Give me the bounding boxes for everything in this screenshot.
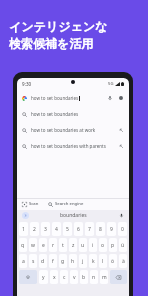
button[interactable]: r — [49, 238, 57, 252]
button[interactable]: 8 — [96, 222, 105, 236]
button[interactable]: l — [99, 254, 107, 268]
button[interactable]: z — [69, 238, 77, 252]
staticText: 8 — [99, 226, 102, 233]
button[interactable]: how to set boundaries — [22, 90, 124, 106]
staticText: Scan — [29, 201, 39, 207]
staticText: 7 — [88, 226, 91, 233]
button[interactable]: 3 — [41, 222, 50, 236]
staticText: how to set boundaries — [31, 111, 79, 117]
staticText: 検索候補を活用 — [9, 36, 94, 51]
button[interactable]: how to set boundaries with parents — [22, 138, 124, 154]
button[interactable]: Clear — [118, 95, 124, 101]
button[interactable]: t — [59, 238, 67, 252]
staticText: 6 — [77, 226, 80, 233]
button[interactable]: Insert suggestion — [119, 128, 124, 133]
staticText: d — [41, 258, 45, 265]
button[interactable]: Insert suggestion — [119, 144, 124, 149]
staticText: how to set boundaries with parents — [31, 143, 106, 149]
staticText: l — [102, 258, 104, 265]
button[interactable]: f — [49, 254, 57, 268]
staticText: ö — [111, 258, 115, 265]
staticText: v — [73, 274, 76, 281]
staticText: 4 — [55, 226, 58, 233]
button[interactable]: Scan — [22, 201, 39, 207]
button[interactable]: i — [89, 238, 97, 252]
staticText: 2 — [33, 226, 36, 233]
staticText: 3 — [44, 226, 47, 233]
staticText: 5G — [108, 81, 114, 87]
button[interactable]: ö — [109, 254, 117, 268]
staticText: how to set boundaries — [31, 95, 79, 101]
staticText: 9 — [110, 226, 113, 233]
button[interactable]: s — [29, 254, 37, 268]
button[interactable]: Expand — [22, 212, 29, 219]
button[interactable]: w — [29, 238, 37, 252]
button[interactable]: ä — [119, 254, 127, 268]
staticText: y — [42, 274, 45, 281]
button[interactable]: how to set boundaries at work — [22, 122, 124, 138]
button[interactable]: 5 — [63, 222, 72, 236]
button[interactable]: boundaries — [60, 212, 87, 219]
staticText: j — [82, 258, 84, 265]
staticText: 5 — [66, 226, 69, 233]
staticText: 9:30 — [22, 81, 32, 87]
button[interactable]: q — [19, 238, 27, 252]
staticText: c — [63, 274, 66, 281]
button[interactable]: u — [79, 238, 87, 252]
button[interactable]: g — [59, 254, 67, 268]
button[interactable]: y — [39, 270, 48, 284]
button[interactable]: 2 — [30, 222, 39, 236]
staticText: f — [52, 258, 54, 265]
staticText: n — [92, 274, 96, 281]
button[interactable]: c — [60, 270, 68, 284]
staticText: t — [62, 242, 64, 249]
staticText: g — [61, 258, 65, 265]
button[interactable]: Search engine — [48, 201, 84, 207]
button[interactable]: x — [50, 270, 58, 284]
button[interactable]: 4 — [52, 222, 61, 236]
button[interactable]: Backspace — [110, 270, 127, 284]
staticText: ü — [121, 242, 125, 249]
button[interactable]: o — [99, 238, 107, 252]
staticText: s — [32, 258, 35, 265]
staticText: ä — [122, 258, 125, 265]
button[interactable]: k — [89, 254, 97, 268]
button[interactable]: b — [80, 270, 88, 284]
button[interactable]: 1 — [19, 222, 28, 236]
button[interactable]: e — [39, 238, 47, 252]
staticText: z — [72, 242, 75, 249]
button[interactable]: n — [90, 270, 98, 284]
staticText: Search engine — [55, 201, 84, 207]
button[interactable]: how to set boundaries — [22, 106, 124, 122]
staticText: b — [82, 274, 86, 281]
staticText: r — [52, 242, 55, 249]
button[interactable]: j — [79, 254, 87, 268]
button[interactable]: 7 — [85, 222, 94, 236]
button[interactable]: m — [100, 270, 108, 284]
button[interactable]: Shift — [19, 270, 37, 284]
staticText: 1 — [22, 226, 25, 233]
button[interactable]: a — [19, 254, 27, 268]
button[interactable]: 6 — [74, 222, 83, 236]
staticText: how to set boundaries at work — [31, 127, 96, 133]
staticText: e — [42, 242, 45, 249]
button[interactable]: Voice input — [119, 213, 124, 218]
button[interactable]: h — [69, 254, 77, 268]
button[interactable]: d — [39, 254, 47, 268]
staticText: w — [31, 242, 35, 249]
staticText: m — [102, 274, 107, 281]
staticText: a — [22, 258, 25, 265]
button[interactable]: ü — [119, 238, 127, 252]
button[interactable]: 9 — [107, 222, 116, 236]
staticText: h — [71, 258, 75, 265]
button[interactable]: 0 — [118, 222, 127, 236]
button[interactable]: p — [109, 238, 117, 252]
button[interactable]: v — [70, 270, 78, 284]
staticText: q — [21, 242, 25, 249]
staticText: 0 — [121, 226, 124, 233]
staticText: インテリジェンな — [9, 19, 108, 34]
button[interactable]: Voice search — [107, 95, 113, 101]
staticText: i — [92, 242, 94, 249]
staticText: p — [111, 242, 115, 249]
staticText: o — [101, 242, 105, 249]
